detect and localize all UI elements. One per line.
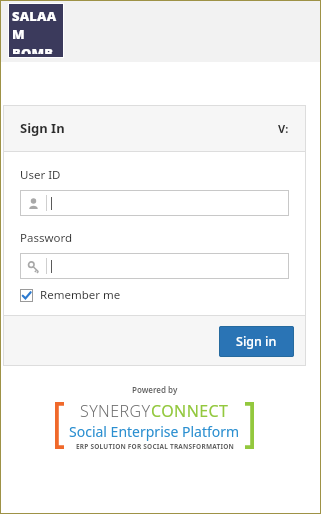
button[interactable] [20, 190, 289, 216]
button[interactable]: Remember me [20, 287, 121, 303]
staticText: Sign In [20, 119, 65, 137]
button[interactable] [20, 253, 289, 279]
staticText: User ID [20, 167, 61, 183]
staticText: CONNECT [151, 400, 229, 422]
staticText: ERP SOLUTION FOR SOCIAL TRANSFORMATION [76, 442, 234, 451]
staticText: Sign in [236, 333, 277, 350]
staticText: SALAAM [12, 7, 60, 43]
staticText: Password [20, 230, 73, 246]
button[interactable]: Sign in [219, 326, 294, 357]
staticText: V: [278, 121, 289, 136]
staticText: BOMBAY [12, 44, 60, 54]
staticText: SYNERGY [80, 400, 151, 422]
staticText: Social Enterprise Platform [69, 422, 240, 441]
staticText: Remember me [40, 287, 121, 303]
staticText: Powered by [132, 384, 178, 395]
